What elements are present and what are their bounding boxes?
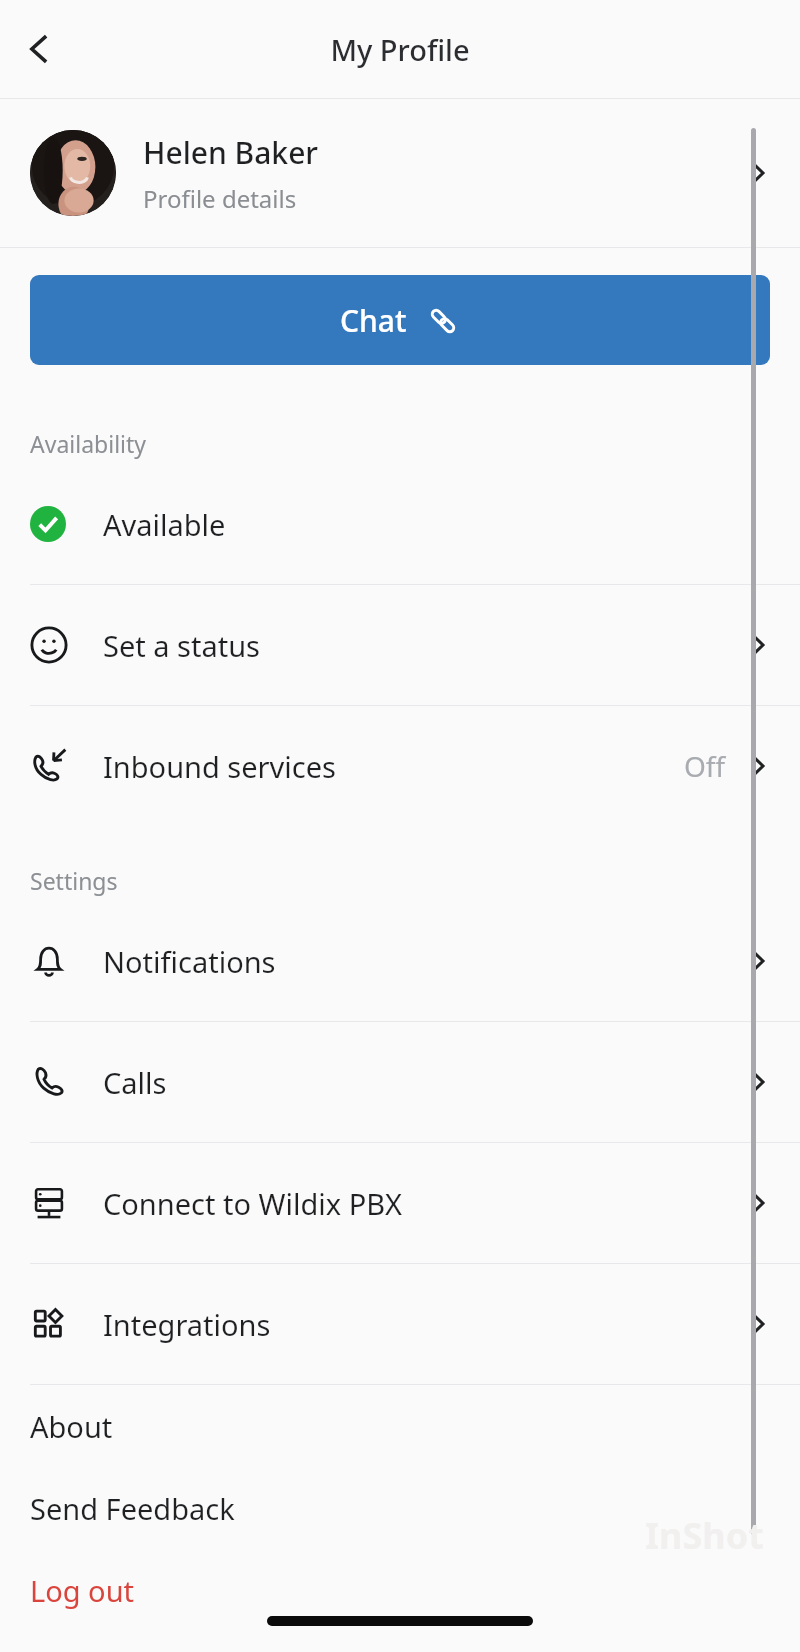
button[interactable]: Calls xyxy=(0,1022,800,1142)
button[interactable]: About xyxy=(0,1385,800,1467)
staticText: Available xyxy=(103,505,226,544)
button[interactable]: Inbound services xyxy=(0,706,800,826)
button[interactable]: Send Feedback xyxy=(0,1467,800,1549)
staticText: Inbound services xyxy=(103,747,684,786)
button[interactable]: Set a status xyxy=(0,585,800,705)
button[interactable]: Helen Baker xyxy=(0,99,800,247)
staticText: Off xyxy=(684,747,726,785)
staticText: Send Feedback xyxy=(30,1489,235,1528)
staticText: About xyxy=(30,1407,113,1446)
staticText: Integrations xyxy=(103,1305,742,1344)
staticText: Connect to Wildix PBX xyxy=(103,1184,742,1223)
staticText: My Profile xyxy=(330,30,470,69)
staticText: Settings xyxy=(30,865,118,896)
button[interactable]: Chat xyxy=(30,275,770,365)
staticText: Set a status xyxy=(103,626,742,665)
staticText: Profile details xyxy=(143,182,297,215)
button[interactable]: Log out xyxy=(0,1549,800,1631)
button[interactable]: Connect to Wildix PBX xyxy=(0,1143,800,1263)
button[interactable]: Available xyxy=(0,464,800,584)
staticText: Helen Baker xyxy=(143,132,319,173)
staticText: Notifications xyxy=(103,942,742,981)
staticText: Chat xyxy=(340,300,407,341)
staticText: InShot xyxy=(645,1511,764,1560)
staticText: Log out xyxy=(30,1571,135,1610)
staticText: Calls xyxy=(103,1063,742,1102)
button[interactable]: Notifications xyxy=(0,901,800,1021)
staticText: Availability xyxy=(30,428,147,459)
button[interactable]: Back xyxy=(10,19,70,79)
button[interactable]: Integrations xyxy=(0,1264,800,1384)
